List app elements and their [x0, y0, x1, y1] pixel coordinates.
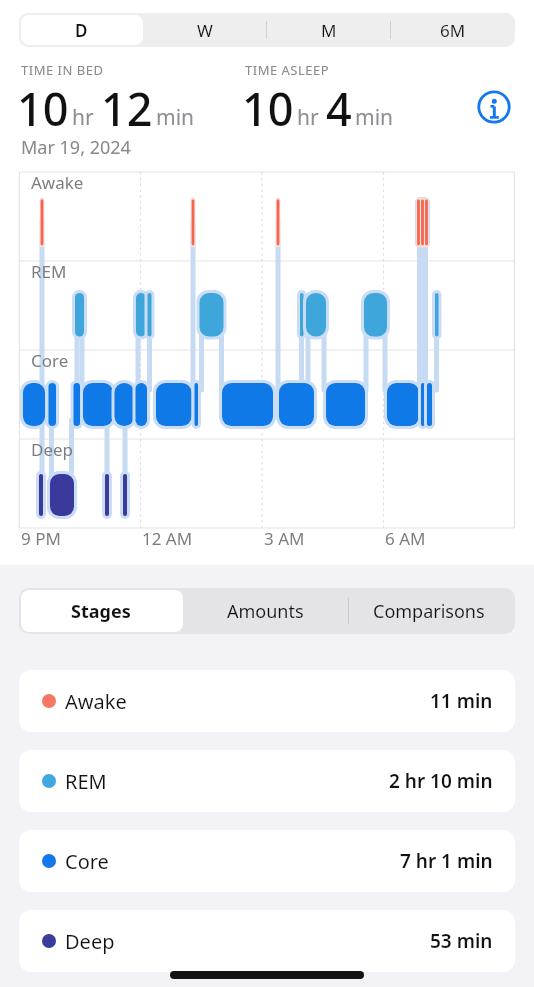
- button[interactable]: Core: [19, 830, 515, 892]
- staticText: 6M: [440, 19, 466, 42]
- staticText: Deep: [31, 438, 74, 461]
- staticText: 4: [326, 78, 352, 139]
- staticText: 6 AM: [385, 527, 426, 550]
- staticText: min: [355, 103, 394, 132]
- staticText: TIME IN BED: [21, 61, 104, 79]
- staticText: min: [156, 103, 195, 132]
- staticText: TIME ASLEEP: [245, 61, 330, 79]
- button[interactable]: Comparisons: [347, 588, 511, 634]
- button[interactable]: Stages: [19, 588, 183, 634]
- staticText: 11 min: [430, 688, 493, 714]
- staticText: Awake: [31, 171, 84, 194]
- button[interactable]: [477, 90, 511, 124]
- staticText: Awake: [65, 688, 127, 715]
- staticText: 53 min: [430, 928, 493, 954]
- staticText: 10: [17, 78, 69, 139]
- button[interactable]: D: [19, 13, 143, 47]
- staticText: D: [75, 19, 88, 42]
- staticText: 10: [242, 78, 294, 139]
- button[interactable]: Deep: [19, 910, 515, 972]
- staticText: Deep: [65, 928, 115, 955]
- staticText: Core: [31, 349, 69, 372]
- staticText: 2 hr 10 min: [389, 768, 493, 794]
- button[interactable]: W: [143, 13, 267, 47]
- staticText: 12: [101, 78, 153, 139]
- staticText: REM: [31, 260, 67, 283]
- staticText: REM: [65, 768, 107, 795]
- staticText: M: [321, 19, 337, 42]
- staticText: Comparisons: [373, 599, 485, 624]
- button[interactable]: REM: [19, 750, 515, 812]
- button[interactable]: Awake: [19, 670, 515, 732]
- button[interactable]: 6M: [391, 13, 515, 47]
- staticText: 7 hr 1 min: [400, 848, 493, 874]
- staticText: Mar 19, 2024: [21, 135, 131, 160]
- staticText: Stages: [71, 599, 131, 624]
- button[interactable]: Amounts: [183, 588, 347, 634]
- staticText: 9 PM: [21, 527, 61, 550]
- button[interactable]: M: [267, 13, 391, 47]
- staticText: hr: [297, 103, 319, 132]
- staticText: hr: [72, 103, 94, 132]
- staticText: Amounts: [227, 599, 304, 624]
- staticText: 12 AM: [142, 527, 193, 550]
- staticText: Core: [65, 848, 109, 875]
- staticText: 3 AM: [264, 527, 305, 550]
- staticText: W: [197, 19, 213, 42]
